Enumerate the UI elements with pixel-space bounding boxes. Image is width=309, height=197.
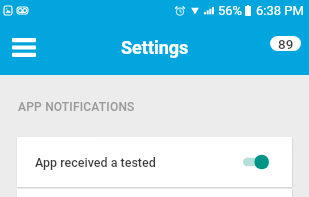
staticText: APP NOTIFICATIONS (18, 100, 135, 114)
staticText: App received a tested (35, 155, 156, 170)
button[interactable]: Toggle app notifications (243, 153, 269, 171)
button[interactable]: Open navigation menu (6, 29, 42, 65)
staticText: 56% (218, 3, 243, 18)
button[interactable]: App received a tested (17, 137, 292, 187)
staticText: 89 (278, 36, 294, 51)
staticText: Settings (121, 37, 189, 58)
staticText: 6:38 PM (256, 3, 304, 18)
button[interactable]: 89 (270, 36, 301, 51)
